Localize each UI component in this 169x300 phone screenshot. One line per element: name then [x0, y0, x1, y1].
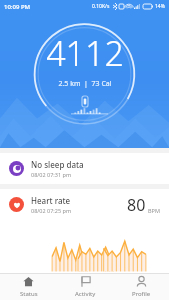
- button[interactable]: [0, 220, 169, 273]
- staticText: 2.5 km | 73 Cal: [58, 79, 112, 89]
- button[interactable]: Status: [0, 274, 57, 300]
- button[interactable]: No sleep data: [0, 153, 169, 184]
- button[interactable]: Activity: [57, 274, 113, 300]
- staticText: Status: [20, 290, 38, 298]
- staticText: BPM: [148, 207, 160, 214]
- staticText: 80: [127, 194, 146, 216]
- staticText: 14%: [155, 3, 165, 10]
- staticText: 0.10K/s: [92, 3, 110, 10]
- staticText: 4112: [46, 30, 124, 76]
- staticText: Activity: [75, 290, 96, 298]
- staticText: 10:09 PM: [4, 3, 31, 11]
- staticText: 08/02 07:31 pm: [31, 171, 72, 178]
- staticText: Profile: [132, 290, 151, 298]
- button[interactable]: Heart rate: [0, 189, 169, 220]
- button[interactable]: Profile: [113, 274, 169, 300]
- staticText: 08/02 07:25 pm: [31, 207, 72, 214]
- staticText: No sleep data: [31, 159, 84, 170]
- staticText: Heart rate: [31, 195, 71, 206]
